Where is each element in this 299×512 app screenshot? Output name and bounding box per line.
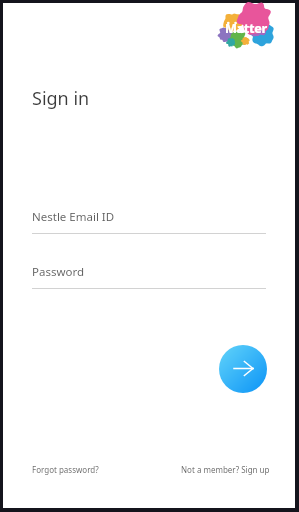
button[interactable]: Forgot password? — [32, 464, 99, 475]
button[interactable]: Password — [32, 258, 266, 289]
button[interactable]: Sign in — [219, 345, 267, 393]
staticText: Not a member? Sign up — [181, 464, 270, 475]
staticText: Sign in — [32, 86, 90, 111]
button[interactable]: Not a member? Sign up — [181, 464, 270, 475]
staticText: Nestle Email ID — [32, 209, 115, 225]
staticText: Password — [32, 264, 85, 280]
staticText: Forgot password? — [32, 464, 99, 475]
staticText: Matter — [225, 20, 267, 37]
button[interactable]: Nestle Email ID — [32, 203, 266, 234]
